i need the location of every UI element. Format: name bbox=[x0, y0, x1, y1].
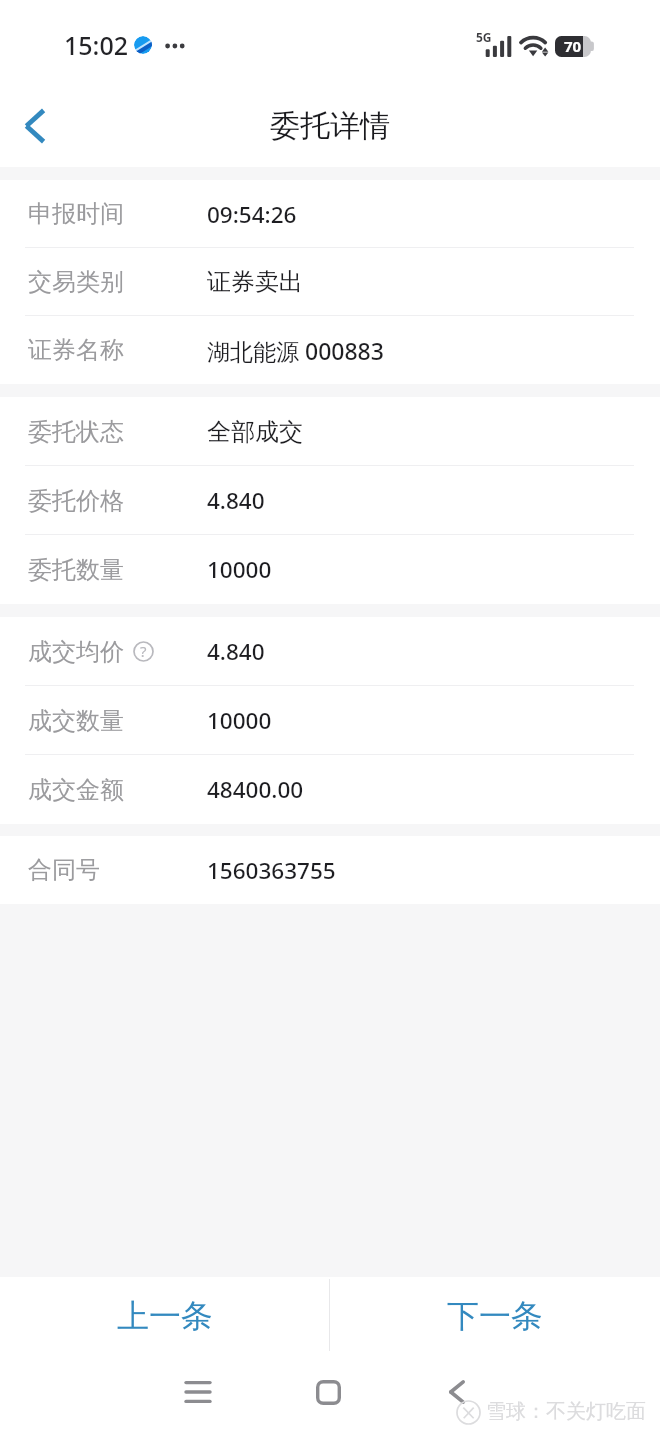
button[interactable]: 成交数量 bbox=[0, 686, 660, 755]
staticText: 下一条 bbox=[447, 1296, 543, 1336]
staticText: 48400.00 bbox=[207, 774, 304, 805]
button[interactable]: 委托价格 bbox=[0, 466, 660, 535]
button[interactable]: 委托状态 bbox=[0, 397, 660, 466]
button[interactable]: 证券名称 bbox=[0, 316, 660, 384]
staticText: 15:02 bbox=[64, 28, 129, 62]
staticText: 成交均价 bbox=[28, 637, 124, 667]
button[interactable]: Back bbox=[0, 84, 69, 167]
staticText: 5G bbox=[476, 29, 492, 45]
staticText: 申报时间 bbox=[28, 199, 124, 229]
staticText: 委托状态 bbox=[28, 417, 124, 447]
staticText: 证券名称 bbox=[28, 335, 124, 365]
staticText: 4.840 bbox=[207, 485, 265, 516]
staticText: ? bbox=[140, 641, 147, 661]
staticText: 1560363755 bbox=[207, 855, 336, 886]
staticText: 委托价格 bbox=[28, 486, 124, 516]
button[interactable]: 委托数量 bbox=[0, 535, 660, 604]
button[interactable]: 下一条 bbox=[330, 1277, 660, 1355]
button[interactable]: 成交均价 bbox=[0, 617, 660, 686]
staticText: 委托数量 bbox=[28, 555, 124, 585]
staticText: 证券卖出 bbox=[207, 267, 303, 297]
staticText: 湖北能源 000883 bbox=[207, 335, 384, 366]
staticText: 10000 bbox=[207, 705, 272, 736]
staticText: 全部成交 bbox=[207, 417, 303, 447]
button[interactable]: 申报时间 bbox=[0, 180, 660, 248]
button[interactable]: Recent apps bbox=[168, 1362, 228, 1422]
button[interactable]: 成交金额 bbox=[0, 755, 660, 824]
staticText: 成交金额 bbox=[28, 775, 124, 805]
button[interactable]: 合同号 bbox=[0, 836, 660, 904]
button[interactable]: 上一条 bbox=[0, 1277, 330, 1355]
staticText: 09:54:26 bbox=[207, 199, 297, 230]
staticText: 交易类别 bbox=[28, 267, 124, 297]
staticText: 成交数量 bbox=[28, 706, 124, 736]
button[interactable]: Back bbox=[427, 1362, 487, 1422]
button[interactable]: 交易类别 bbox=[0, 248, 660, 316]
staticText: 4.840 bbox=[207, 636, 265, 667]
staticText: 10000 bbox=[207, 554, 272, 585]
staticText: 合同号 bbox=[28, 855, 100, 885]
staticText: 委托详情 bbox=[270, 107, 390, 145]
staticText: 70 bbox=[564, 36, 582, 56]
button[interactable]: Home bbox=[298, 1362, 358, 1422]
staticText: 上一条 bbox=[117, 1296, 213, 1336]
staticText: 雪球：不关灯吃面 bbox=[486, 1399, 646, 1424]
